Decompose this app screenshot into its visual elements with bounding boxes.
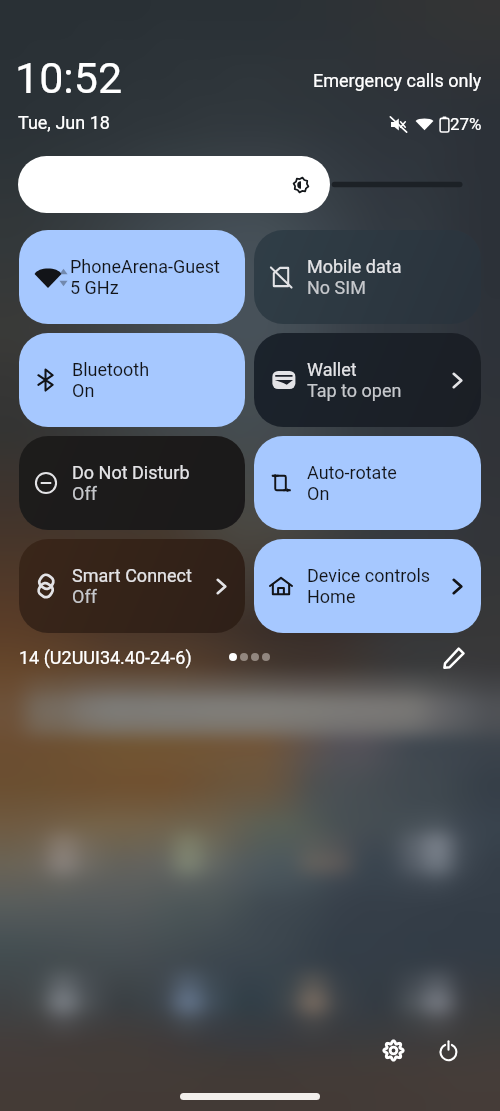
staticText: Mobile data <box>307 256 402 277</box>
staticText: 5 GHz <box>70 277 119 298</box>
staticText: 14 (U2UUI34.40-24-6) <box>19 647 192 668</box>
button[interactable]: Smart Connect <box>19 539 245 633</box>
button[interactable]: Auto-rotate <box>254 436 481 530</box>
staticText: On <box>307 483 330 504</box>
staticText: Bluetooth <box>72 359 150 380</box>
staticText: Device controls <box>307 565 431 586</box>
staticText: Do Not Disturb <box>72 462 190 483</box>
button[interactable]: Power <box>428 1030 469 1071</box>
staticText: Auto-rotate <box>307 462 397 483</box>
button[interactable]: Mobile data <box>254 230 481 324</box>
staticText: Off <box>72 586 97 607</box>
button[interactable]: Device controls <box>254 539 481 633</box>
staticText: PhoneArena-Guest <box>70 256 220 277</box>
staticText: 27% <box>450 114 482 134</box>
staticText: Off <box>72 483 97 504</box>
button[interactable]: Do Not Disturb <box>19 436 245 530</box>
button[interactable]: Bluetooth <box>19 333 245 427</box>
button[interactable]: Settings <box>373 1030 414 1071</box>
staticText: Tap to open <box>307 380 402 401</box>
staticText: On <box>72 380 95 401</box>
staticText: 10:52 <box>15 53 123 103</box>
staticText: No SIM <box>307 277 366 298</box>
staticText: Home <box>307 586 356 607</box>
staticText: Smart Connect <box>72 565 192 586</box>
button[interactable]: Edit tiles <box>437 640 471 674</box>
staticText: Wallet <box>307 359 357 380</box>
staticText: Tue, Jun 18 <box>18 112 110 133</box>
button[interactable]: PhoneArena-Guest <box>19 230 245 324</box>
button[interactable]: Wallet <box>254 333 481 427</box>
button[interactable]: Brightness <box>18 156 482 213</box>
staticText: Emergency calls only <box>313 70 482 91</box>
